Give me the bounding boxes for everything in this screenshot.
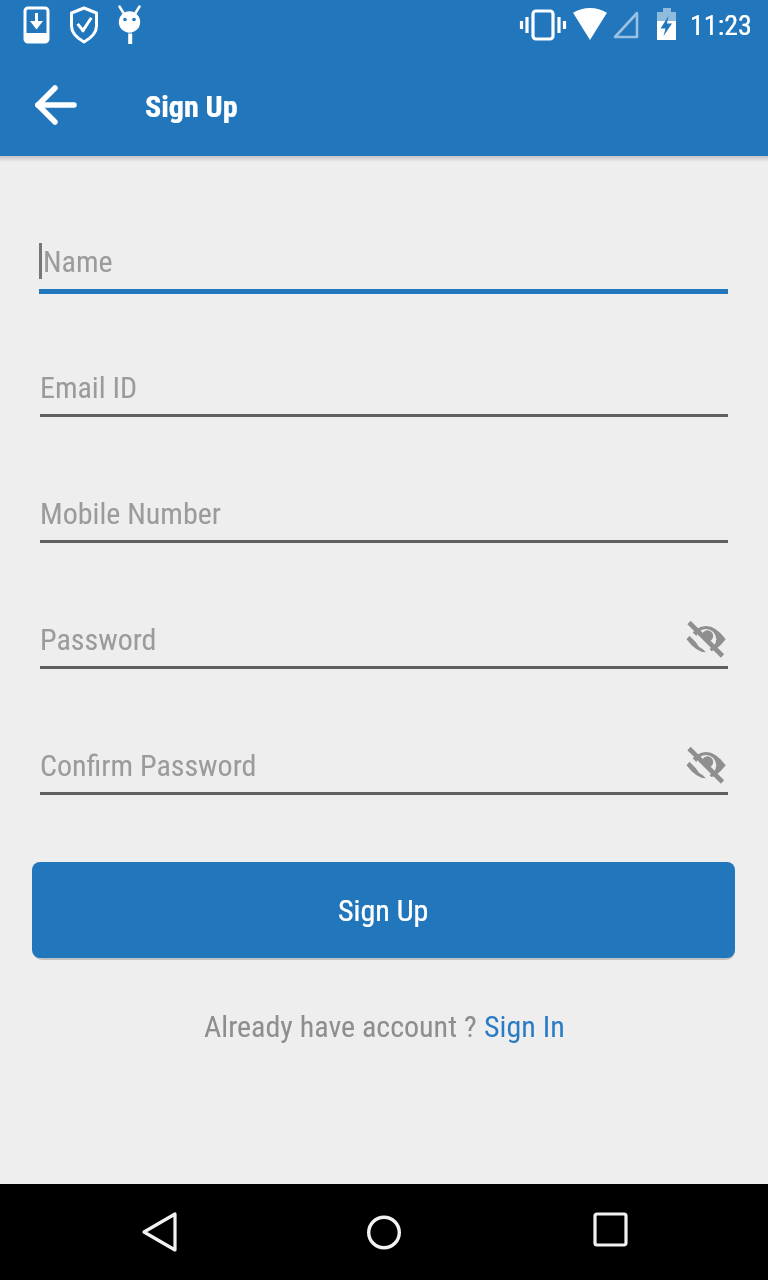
button[interactable]	[40, 481, 728, 545]
button[interactable]: Sign In	[484, 1009, 565, 1044]
staticText: Name	[43, 244, 113, 279]
button[interactable]	[40, 607, 728, 671]
staticText: Sign In	[484, 1009, 565, 1044]
button[interactable]: Sign Up	[32, 862, 735, 958]
button[interactable]	[560, 1184, 656, 1280]
button[interactable]	[112, 1184, 208, 1280]
button[interactable]	[680, 613, 732, 665]
staticText: Mobile Number	[40, 496, 221, 531]
button[interactable]	[18, 67, 94, 143]
staticText: Sign Up	[145, 89, 238, 124]
button[interactable]	[40, 355, 728, 419]
staticText: Already have account ?	[204, 1009, 484, 1044]
staticText: Password	[40, 622, 157, 657]
button[interactable]	[680, 739, 732, 791]
staticText: Confirm Password	[40, 748, 257, 783]
staticText: Sign Up	[338, 893, 429, 928]
staticText: 11:23	[690, 9, 752, 42]
button[interactable]	[40, 229, 728, 293]
staticText: Email ID	[40, 370, 138, 405]
button[interactable]	[40, 733, 728, 797]
button[interactable]	[336, 1184, 432, 1280]
